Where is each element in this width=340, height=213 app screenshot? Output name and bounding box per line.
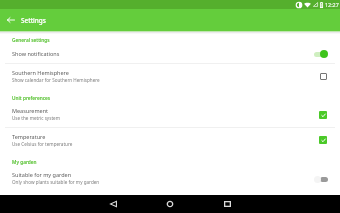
button[interactable]: Show notifications toggle (314, 48, 328, 60)
staticText: Use Celsius for temperature (12, 141, 73, 147)
button[interactable]: Checkbox checked (317, 109, 329, 121)
button[interactable]: Measurement (0, 102, 340, 127)
button[interactable]: Back (4, 13, 18, 27)
button[interactable]: Suitable for my garden toggle (314, 173, 328, 185)
staticText: My garden (12, 159, 37, 166)
staticText: Suitable for my garden (12, 171, 72, 178)
staticText: Measurement (12, 107, 49, 114)
button[interactable]: Suitable for my garden (0, 167, 340, 191)
button[interactable]: Checkbox checked (317, 134, 329, 146)
staticText: Show notifications (12, 50, 60, 57)
staticText: Use the metric system (12, 115, 60, 121)
staticText: Unit preferences (12, 95, 51, 102)
staticText: Southern Hemisphere (12, 69, 69, 76)
button[interactable]: Back (101, 195, 125, 213)
staticText: Show calendar for Southern Hemisphere (12, 77, 100, 83)
button[interactable]: Checkbox unchecked (317, 70, 329, 82)
staticText: Only show plants suitable for my garden (12, 179, 100, 185)
staticText: General settings (12, 37, 50, 44)
button[interactable]: Show notifications (0, 45, 340, 63)
button[interactable]: Southern Hemisphere (0, 64, 340, 88)
staticText: 12:27 (325, 1, 339, 8)
button[interactable]: Recent apps (215, 195, 239, 213)
button[interactable]: Temperature (0, 128, 340, 152)
staticText: Temperature (12, 133, 46, 140)
button[interactable]: Home (158, 195, 182, 213)
staticText: Settings (21, 16, 46, 25)
